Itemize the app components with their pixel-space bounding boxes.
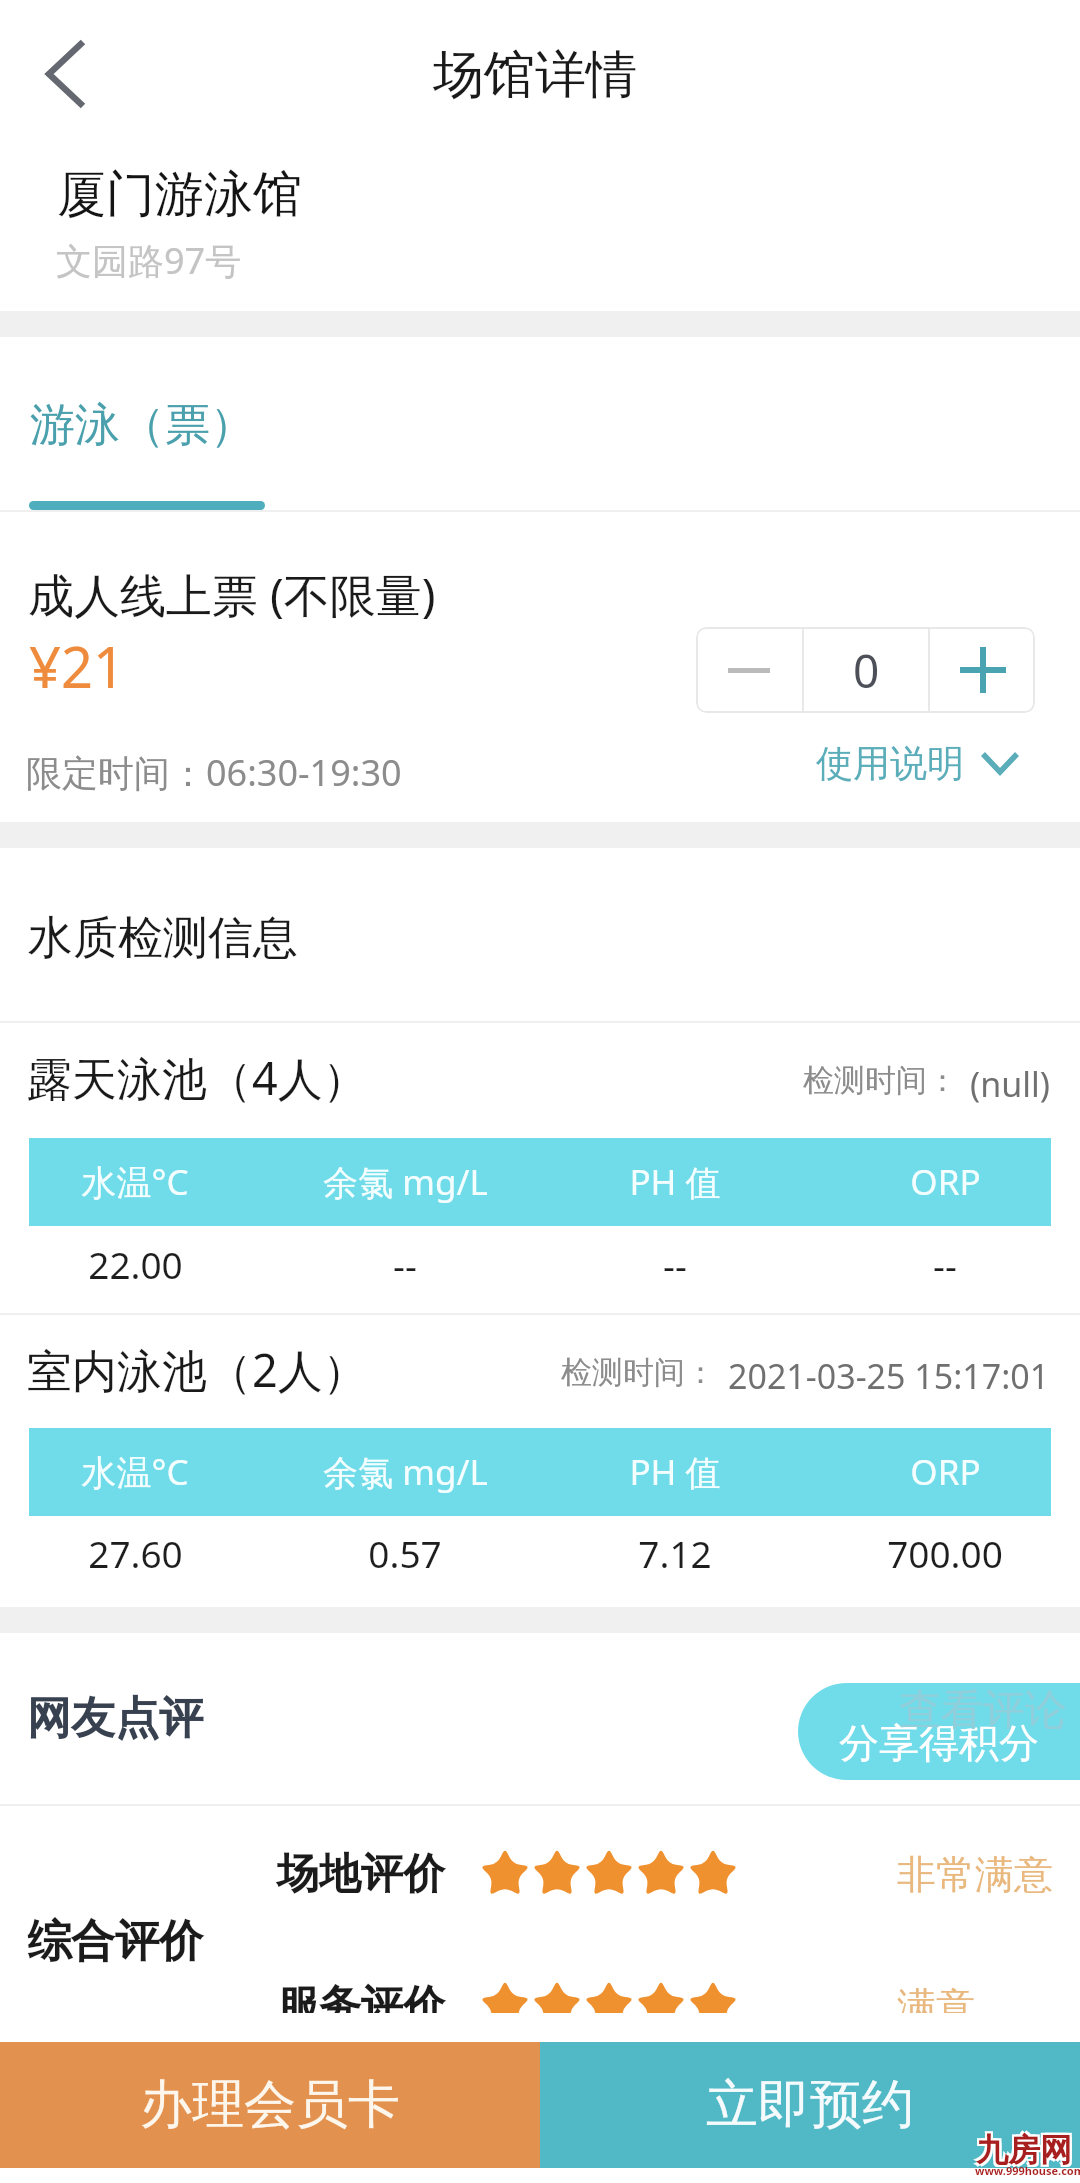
staticText: (null): [970, 1061, 1050, 1107]
staticText: PH 值: [629, 1448, 721, 1496]
staticText: 0: [853, 639, 880, 702]
staticText: 九房网: [974, 2132, 1070, 2172]
button[interactable]: Back: [18, 26, 114, 122]
staticText: 成人线上票 (不限量): [28, 563, 436, 626]
staticText: 分享得积分: [839, 1718, 1039, 1768]
button[interactable]: Decrease quantity: [696, 627, 802, 713]
staticText: 水温°C: [81, 1448, 189, 1496]
staticText: 网友点评: [27, 1691, 203, 1746]
staticText: 游泳（票）: [30, 397, 255, 454]
staticText: 余氯 mg/L: [323, 1448, 488, 1496]
staticText: 7.12: [638, 1528, 712, 1574]
staticText: --: [393, 1239, 417, 1285]
staticText: 700.00: [887, 1528, 1003, 1574]
staticText: 服务评价: [277, 1980, 445, 2013]
staticText: 九房网: [978, 2128, 1074, 2168]
staticText: 九房网: [974, 2128, 1070, 2168]
button[interactable]: 分享得积分: [798, 1683, 1080, 1780]
staticText: 综合评价: [27, 1914, 203, 1969]
staticText: 22.00: [88, 1239, 183, 1285]
staticText: 2021-03-25 15:17:01: [728, 1353, 1050, 1399]
staticText: 检测时间：: [803, 1061, 958, 1100]
staticText: ORP: [910, 1448, 981, 1496]
staticText: 室内泳池（2人）: [27, 1339, 368, 1400]
staticText: PH 值: [629, 1158, 721, 1206]
staticText: 检测时间：: [561, 1353, 716, 1392]
staticText: 水温°C: [81, 1158, 189, 1206]
staticText: 露天泳池（4人）: [27, 1047, 368, 1108]
staticText: 0.57: [368, 1528, 442, 1574]
staticText: 查看评论: [899, 1684, 1067, 1737]
staticText: 九房网: [976, 2130, 1072, 2170]
staticText: 余氯 mg/L: [323, 1158, 488, 1206]
staticText: 场馆详情: [433, 43, 637, 107]
staticText: 满意: [897, 1982, 975, 2013]
staticText: --: [933, 1239, 957, 1285]
staticText: 立即预约: [706, 2072, 914, 2138]
staticText: 文园路97号: [56, 236, 242, 285]
staticText: ORP: [910, 1158, 981, 1206]
staticText: 厦门游泳馆: [57, 164, 302, 226]
staticText: --: [663, 1239, 687, 1285]
staticText: 限定时间：06:30-19:30: [26, 748, 402, 797]
staticText: 场地评价: [277, 1848, 445, 1901]
staticText: www.999house.com: [975, 2163, 1080, 2178]
button[interactable]: 立即预约: [540, 2042, 1080, 2168]
staticText: 水质检测信息: [28, 910, 298, 967]
button[interactable]: 使用说明: [816, 733, 1018, 793]
staticText: 办理会员卡: [140, 2072, 400, 2138]
staticText: 九房网: [978, 2132, 1074, 2172]
staticText: ¥21: [29, 628, 126, 704]
staticText: 非常满意: [897, 1850, 1053, 1899]
button[interactable]: Increase quantity: [930, 627, 1035, 713]
staticText: 使用说明: [816, 740, 964, 787]
staticText: 27.60: [88, 1528, 183, 1574]
button[interactable]: 办理会员卡: [0, 2042, 540, 2168]
button[interactable]: 游泳（票）: [22, 380, 282, 470]
